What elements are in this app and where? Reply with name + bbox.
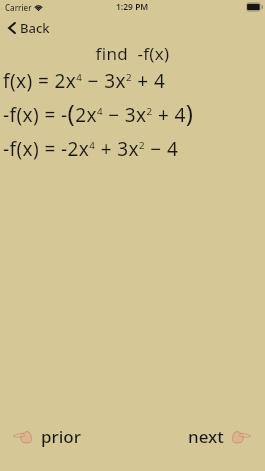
button[interactable]: Previous page xyxy=(10,422,84,451)
staticText: f(x) = 2x4 − 3x2 + 4 xyxy=(3,68,166,94)
staticText: -f(x) = -2x4 + 3x2 − 4 xyxy=(3,136,179,162)
other: Previous page xyxy=(13,430,32,444)
staticText: next xyxy=(188,425,224,448)
staticText: 1:29 PM xyxy=(116,1,149,13)
staticText: find -f(x) xyxy=(0,42,265,65)
staticText: Back xyxy=(20,19,50,37)
staticText: -f(x) = -(2x4 − 3x2 + 4) xyxy=(3,96,194,129)
button[interactable]: Back xyxy=(6,17,52,39)
other: Next page xyxy=(232,430,251,444)
staticText: prior xyxy=(41,425,81,448)
staticText: Carrier xyxy=(5,2,32,13)
button[interactable]: next xyxy=(185,422,254,451)
